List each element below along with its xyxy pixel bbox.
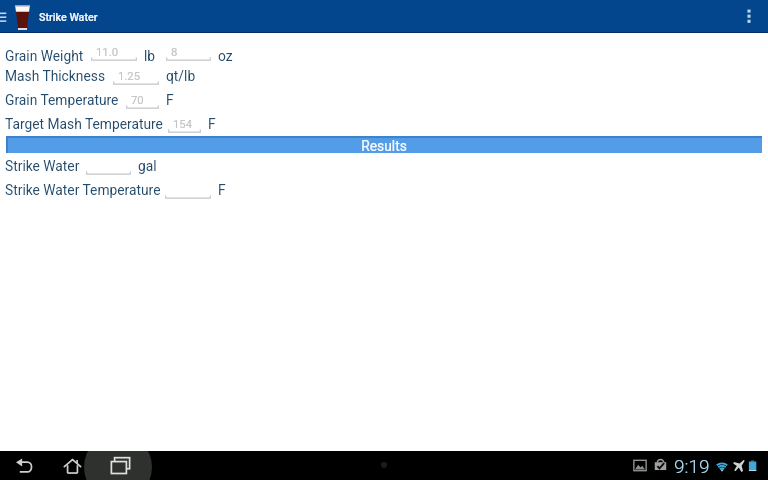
staticText: Mash Thickness [5,68,106,84]
button[interactable]: Target Mash Temperature [5,116,163,132]
button[interactable]: 11.0 [91,44,137,64]
button[interactable]: Grain Weight [5,48,84,64]
staticText: F [166,92,174,108]
staticText: 70 [131,94,144,107]
staticText: 11.0 [96,46,119,59]
staticText: 9:19 [674,455,710,477]
button[interactable]: Strike Water [39,11,98,24]
button[interactable]: Home [53,451,91,480]
button[interactable]: Mash Thickness [5,68,106,84]
staticText: qt/lb [166,68,196,84]
staticText: Results [361,138,407,154]
staticText: Strike Water Temperature [5,182,161,198]
button[interactable]: Recent apps [101,451,139,480]
button[interactable]: F [218,182,226,198]
button[interactable]: 154 [168,116,201,136]
button[interactable]: Open navigation drawer [0,0,10,33]
button[interactable]: 8 [166,44,211,64]
button[interactable]: lb [144,48,156,64]
staticText: 154 [173,118,193,131]
staticText: F [218,182,226,198]
button[interactable]: oz [218,48,233,64]
staticText: F [208,116,216,132]
button[interactable]: Grain Temperature [5,92,119,108]
button[interactable]: F [208,116,216,132]
staticText: Strike Water [5,158,80,174]
button[interactable]: 1.25 [113,68,159,88]
button[interactable]: 70 [126,92,159,112]
staticText: Grain Weight [5,48,84,64]
button[interactable] [165,182,211,202]
button[interactable]: Back [5,451,43,480]
staticText: Grain Temperature [5,92,119,108]
button[interactable]: gal [138,158,157,174]
staticText: Strike Water [39,11,98,24]
staticText: gal [138,158,157,174]
staticText: oz [218,48,233,64]
button[interactable]: More options [731,0,766,33]
button[interactable]: Results [6,136,762,153]
button[interactable]: Strike Water Temperature [5,182,161,198]
staticText: 8 [171,46,178,59]
staticText: 1.25 [118,70,141,83]
staticText: lb [144,48,156,64]
button[interactable]: qt/lb [166,68,196,84]
button[interactable]: F [166,92,174,108]
button[interactable] [86,158,131,178]
staticText: Target Mash Temperature [5,116,163,132]
button[interactable]: Strike Water [5,158,80,174]
